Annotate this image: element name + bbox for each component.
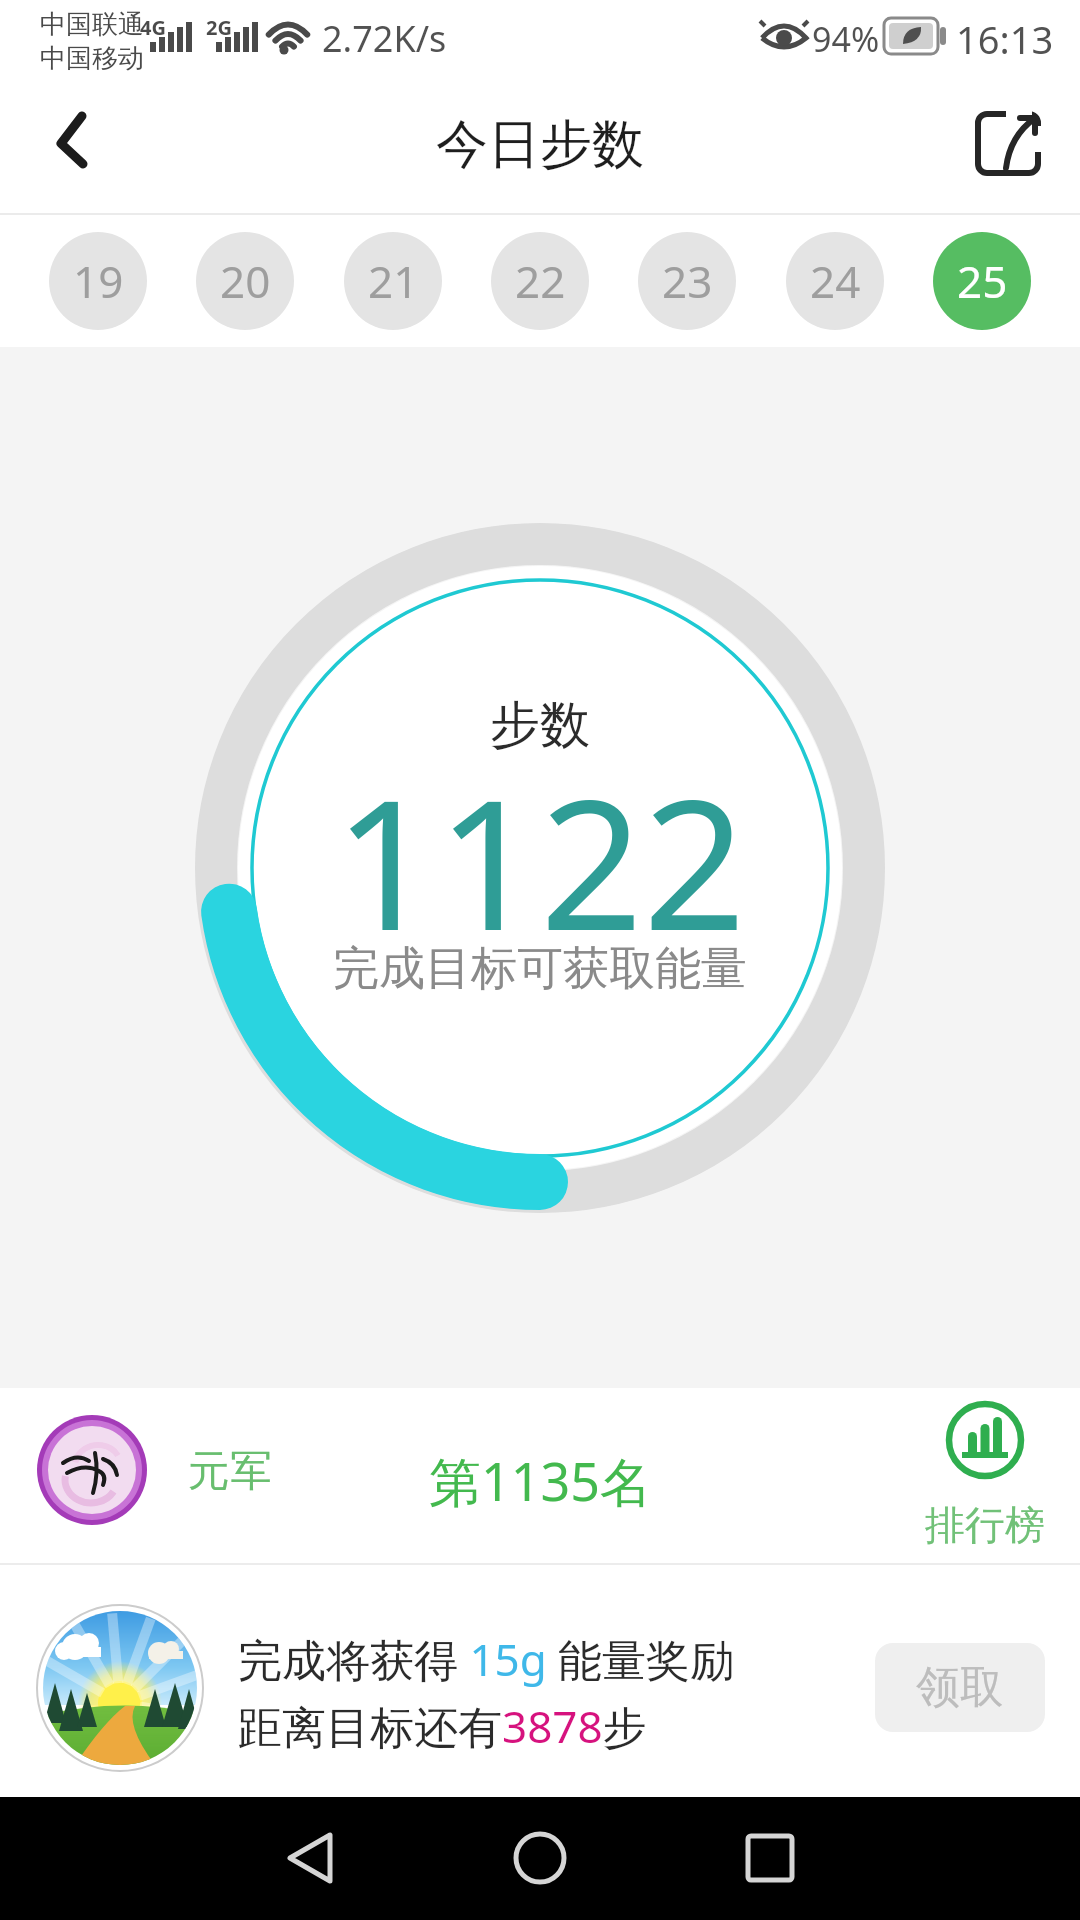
staticText: 距离目标还有3878步 [238,1696,647,1756]
button[interactable] [30,100,110,180]
staticText: 今日步数 [436,112,644,178]
button[interactable]: 22 [491,232,589,330]
staticText: 23 [662,251,713,311]
staticText: 20 [220,251,271,311]
button[interactable]: 领取 [875,1643,1045,1732]
button[interactable] [250,1797,370,1920]
staticText: 1122 [334,738,746,983]
staticText: 22 [515,251,566,311]
staticText: 步数 [490,694,590,757]
staticText: 16:13 [956,13,1054,65]
button[interactable]: 24 [786,232,884,330]
button[interactable]: 19 [49,232,147,330]
staticText: 领取 [916,1660,1004,1715]
staticText: 元军 [188,1445,272,1498]
button[interactable]: 元军 [0,1388,1080,1563]
button[interactable]: 23 [638,232,736,330]
staticText: 排行榜 [925,1500,1045,1550]
staticText: 第1135名 [429,1445,652,1516]
staticText: 25 [957,251,1008,311]
staticText: 21 [368,251,419,311]
staticText: 94% [812,16,880,62]
staticText: 2G [206,14,232,41]
button[interactable]: 21 [344,232,442,330]
staticText: 完成目标可获取能量 [333,940,747,998]
button[interactable]: 25 [933,232,1031,330]
staticText: 4G [140,14,166,41]
button[interactable]: 排行榜 [925,1396,1045,1526]
button[interactable] [480,1797,600,1920]
button[interactable] [962,98,1054,190]
staticText: 中国联通 [40,8,144,41]
staticText: 完成将获得 15g 能量奖励 [238,1629,735,1689]
button[interactable] [710,1797,830,1920]
staticText: 19 [73,251,124,311]
button[interactable]: 20 [196,232,294,330]
staticText: 2.72K/s [322,14,447,63]
staticText: 24 [810,251,861,311]
staticText: 中国移动 [40,42,144,75]
